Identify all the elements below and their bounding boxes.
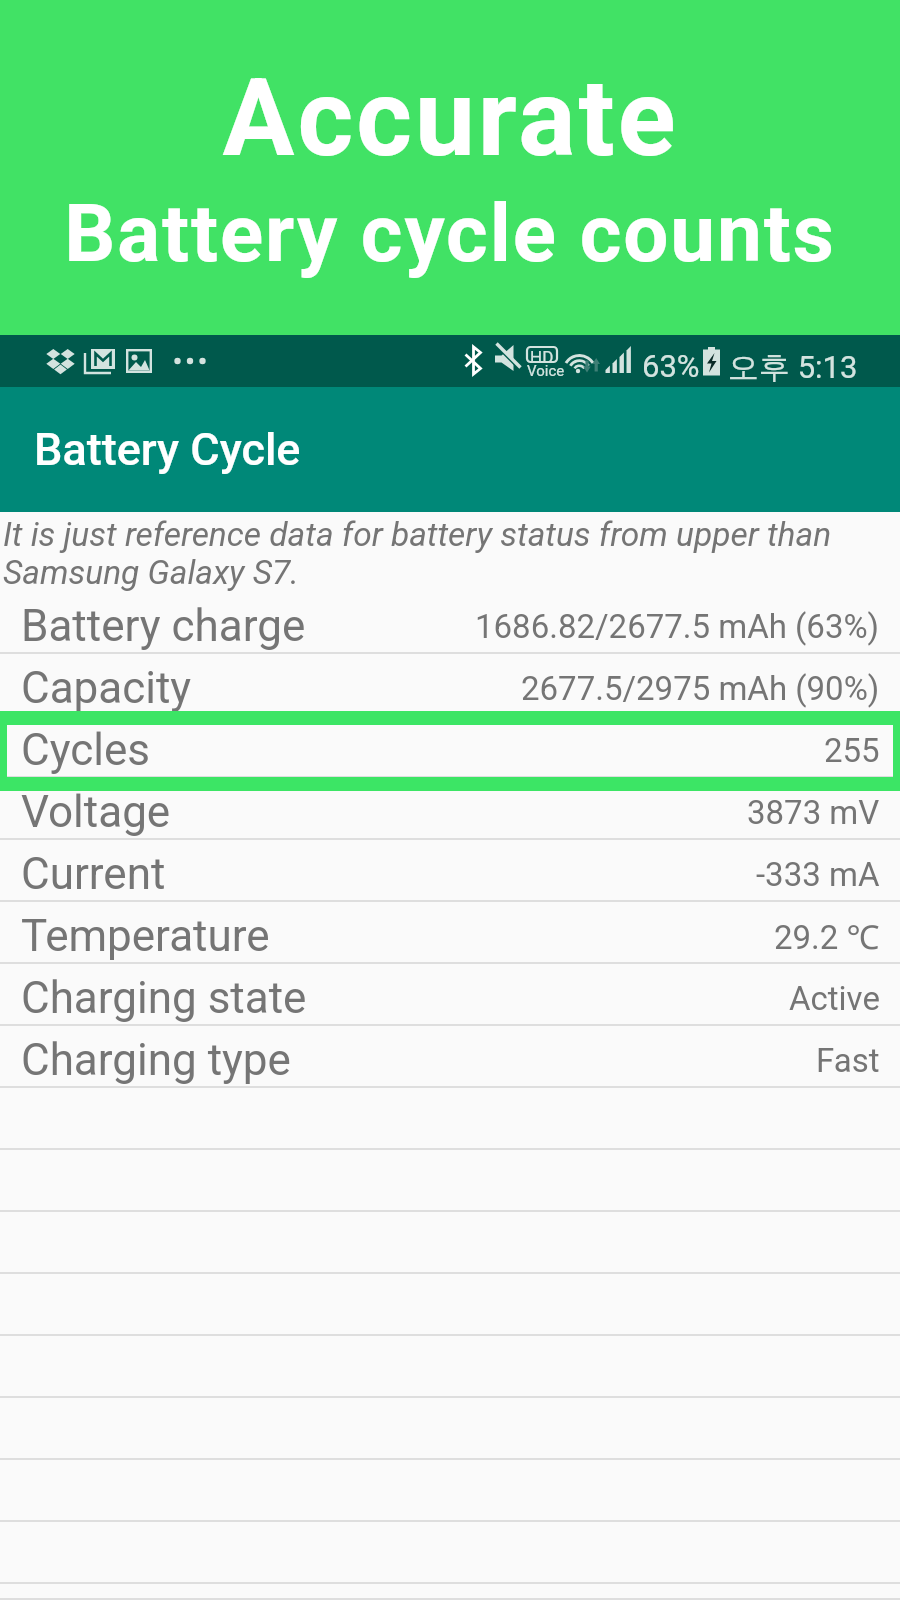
staticText: Active bbox=[789, 979, 880, 1018]
staticText: 29.2 ℃ bbox=[774, 914, 880, 959]
staticText: Charging state bbox=[21, 972, 307, 1024]
button[interactable]: Voltage bbox=[0, 778, 900, 840]
staticText: 255 bbox=[824, 731, 880, 770]
staticText: -333 mA bbox=[756, 855, 880, 894]
staticText: Voltage bbox=[21, 786, 171, 838]
button[interactable]: Temperature bbox=[0, 902, 900, 964]
staticText: Capacity bbox=[21, 662, 192, 714]
staticText: Cycles bbox=[21, 724, 150, 776]
button[interactable]: Battery charge bbox=[0, 592, 900, 654]
button[interactable]: Current bbox=[0, 840, 900, 902]
staticText: HD bbox=[530, 347, 554, 367]
staticText: Voice bbox=[527, 362, 565, 380]
button[interactable]: Charging type bbox=[0, 1026, 900, 1088]
staticText: Battery charge bbox=[21, 600, 306, 652]
button[interactable]: Charging state bbox=[0, 964, 900, 1026]
staticText: It is just reference data for battery st… bbox=[3, 515, 900, 592]
button[interactable]: Accurate bbox=[0, 0, 900, 335]
staticText: Battery Cycle bbox=[34, 423, 301, 476]
staticText: 2677.5/2975 mAh (90%) bbox=[521, 669, 880, 708]
staticText: Temperature bbox=[21, 910, 270, 962]
staticText: Current bbox=[21, 848, 166, 900]
staticText: 오후 5:13 bbox=[728, 348, 858, 387]
staticText: 3873 mV bbox=[747, 793, 880, 832]
staticText: Charging type bbox=[21, 1034, 291, 1086]
staticText: Fast bbox=[816, 1041, 880, 1080]
button[interactable]: Capacity bbox=[0, 654, 900, 716]
staticText: 63% bbox=[642, 348, 700, 384]
staticText: Battery cycle counts bbox=[64, 187, 836, 281]
staticText: 1686.82/2677.5 mAh (63%) bbox=[475, 607, 880, 646]
button[interactable]: Cycles bbox=[0, 716, 900, 778]
staticText: Accurate bbox=[222, 56, 679, 181]
